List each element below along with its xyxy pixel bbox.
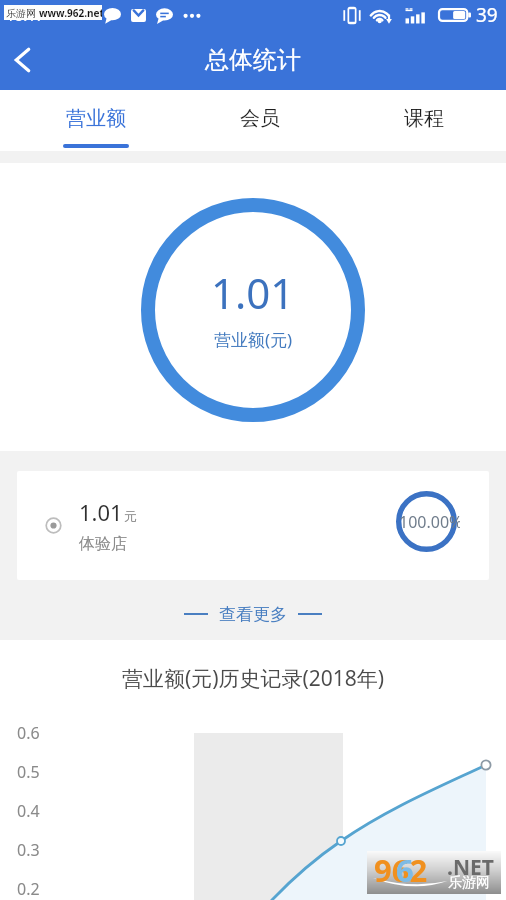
staticText: 课程 [404,106,444,131]
staticText: 会员 [240,106,280,131]
staticText: 查看更多 [219,604,287,625]
button[interactable]: 课程 [342,90,506,151]
staticText: 1.01 [211,264,295,321]
button[interactable]: 营业额 [14,90,178,151]
staticText: 总体统计 [205,45,301,75]
staticText: www.962.net [39,6,102,20]
staticText: 39 [476,2,498,28]
staticText: 营业额(元)历史记录(2018年) [0,664,506,693]
button[interactable]: 1.01 [17,471,489,580]
staticText: .NET [447,853,494,882]
staticText: 1.01 [79,497,123,527]
staticText: 乐游网 [448,874,490,892]
button[interactable]: Back [0,30,44,90]
staticText: 营业额 [66,106,126,131]
staticText: 0.3 [17,839,40,861]
staticText: 乐游网 [6,7,36,20]
staticText: 6 [396,849,414,891]
staticText: 元 [124,508,137,524]
staticText: 体验店 [79,534,127,554]
staticText: 10:17 [6,5,94,25]
button[interactable]: 会员 [178,90,342,151]
staticText: 0.6 [17,722,40,744]
staticText: 0.2 [17,878,40,900]
staticText: 100.00% [399,511,460,533]
staticText: 962 [374,849,428,891]
staticText: 0.4 [17,800,40,822]
staticText: 营业额(元) [214,328,293,351]
button[interactable]: 查看更多 [0,580,506,640]
staticText: 0.5 [17,761,40,783]
